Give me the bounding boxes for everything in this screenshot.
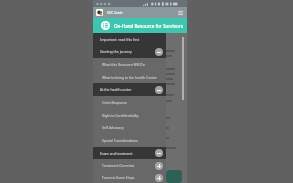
staticText: Treatment Overview [102,163,155,168]
staticText: Important: read this first [100,37,156,42]
button[interactable]: Treatment Overview [93,159,166,172]
button[interactable]: Exam and treatment [93,147,166,159]
button[interactable]: Self Advocacy [93,121,166,134]
button[interactable]: Special Considerations [93,134,166,147]
button[interactable]: Forensic Exam Steps [93,172,166,183]
staticText: Starting the journey [100,49,155,54]
button[interactable]: Starting the journey [93,45,166,58]
staticText: Self Advocacy [102,125,164,130]
staticText: Crisis Response [102,100,164,105]
staticText: MCC Guide [107,11,123,15]
staticText: What this Resource Will Do [102,62,164,67]
staticText: Forensic Exam Steps [102,175,155,180]
staticText: What to bring to the health Center [102,75,164,80]
button[interactable]: What to bring to the health Center [93,71,166,83]
button[interactable]: At the health center [93,83,166,96]
staticText: Special Considerations [102,138,164,143]
button[interactable]: Crisis Response [93,96,166,109]
button[interactable]: What this Resource Will Do [93,58,166,71]
button[interactable]: Menu [176,8,185,17]
staticText: Exam and treatment [100,151,155,156]
staticText: At the health center [100,87,155,92]
button[interactable]: On-Hand Resource for Survivors [93,18,187,33]
button[interactable]: Add [166,170,182,183]
staticText: On-Hand Resource for Survivors [114,23,183,29]
button[interactable]: Right to Confidentiality [93,109,166,121]
button[interactable]: Important: read this first [93,33,166,45]
staticText: Right to Confidentiality [102,113,164,118]
